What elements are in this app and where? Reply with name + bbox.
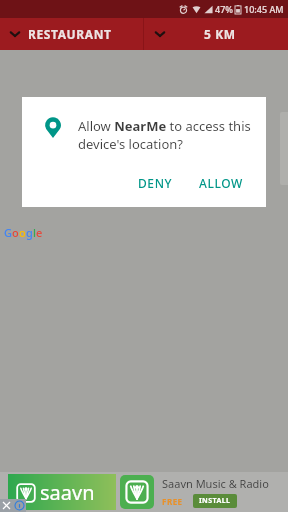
staticText: e — [36, 225, 43, 240]
other: Expand — [153, 27, 167, 41]
staticText: o — [12, 225, 19, 240]
button[interactable]: Expand — [144, 18, 288, 50]
staticText: o — [19, 225, 26, 240]
button[interactable]: ALLOW — [191, 169, 252, 197]
staticText: Allow NearMe to access this device's loc… — [78, 117, 266, 153]
other: Expand — [8, 27, 22, 41]
staticText: RESTAURANT — [28, 26, 112, 42]
button[interactable]: Close ad — [0, 499, 13, 512]
staticText: G — [4, 225, 12, 240]
staticText: l — [33, 225, 36, 240]
button[interactable]: Expand — [0, 18, 143, 50]
staticText: DENY — [138, 175, 173, 191]
staticText: FREE — [162, 496, 183, 507]
button[interactable]: DENY — [130, 169, 181, 197]
staticText: Saavn Music & Radio — [162, 476, 269, 491]
button[interactable]: INSTALL — [199, 496, 231, 506]
staticText: INSTALL — [199, 496, 231, 506]
button[interactable]: Ad info — [13, 499, 26, 512]
staticText: g — [26, 225, 33, 240]
staticText: 10:45 AM — [244, 3, 284, 15]
staticText: saavn — [40, 479, 95, 506]
staticText: ALLOW — [199, 175, 244, 191]
staticText: 5 KM — [204, 26, 236, 42]
button[interactable]: saavn — [8, 472, 280, 512]
staticText: 47% — [215, 3, 233, 15]
